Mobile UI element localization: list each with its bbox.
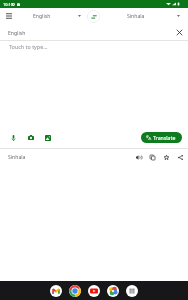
button[interactable]: YouTube — [88, 285, 100, 297]
staticText: 10:10 — [3, 2, 13, 7]
button[interactable]: All apps — [126, 285, 138, 297]
button[interactable]: Chrome — [69, 285, 81, 297]
staticText: Sinhala — [127, 13, 145, 20]
staticText: Sinhala — [8, 154, 26, 161]
button[interactable]: Save — [162, 153, 171, 162]
button[interactable]: Gmail — [50, 285, 62, 297]
button[interactable]: Swap languages — [87, 10, 100, 23]
staticText: English — [33, 13, 51, 20]
staticText: Translate — [153, 134, 176, 141]
button[interactable]: Sinhala — [104, 8, 184, 24]
button[interactable]: Translate — [141, 132, 182, 143]
button[interactable]: Photos — [107, 285, 119, 297]
button[interactable]: Camera — [26, 133, 35, 142]
button[interactable]: Menu — [0, 8, 17, 24]
button[interactable]: Voice input — [9, 133, 18, 142]
staticText: English — [8, 30, 26, 37]
button[interactable]: Share — [176, 153, 185, 162]
button[interactable]: Copy — [148, 153, 157, 162]
button[interactable]: English — [17, 8, 83, 24]
button[interactable]: Gallery — [43, 133, 52, 142]
button[interactable]: Touch to type… — [9, 43, 48, 50]
button[interactable]: Clear text — [174, 27, 185, 38]
button[interactable]: Listen — [134, 153, 143, 162]
